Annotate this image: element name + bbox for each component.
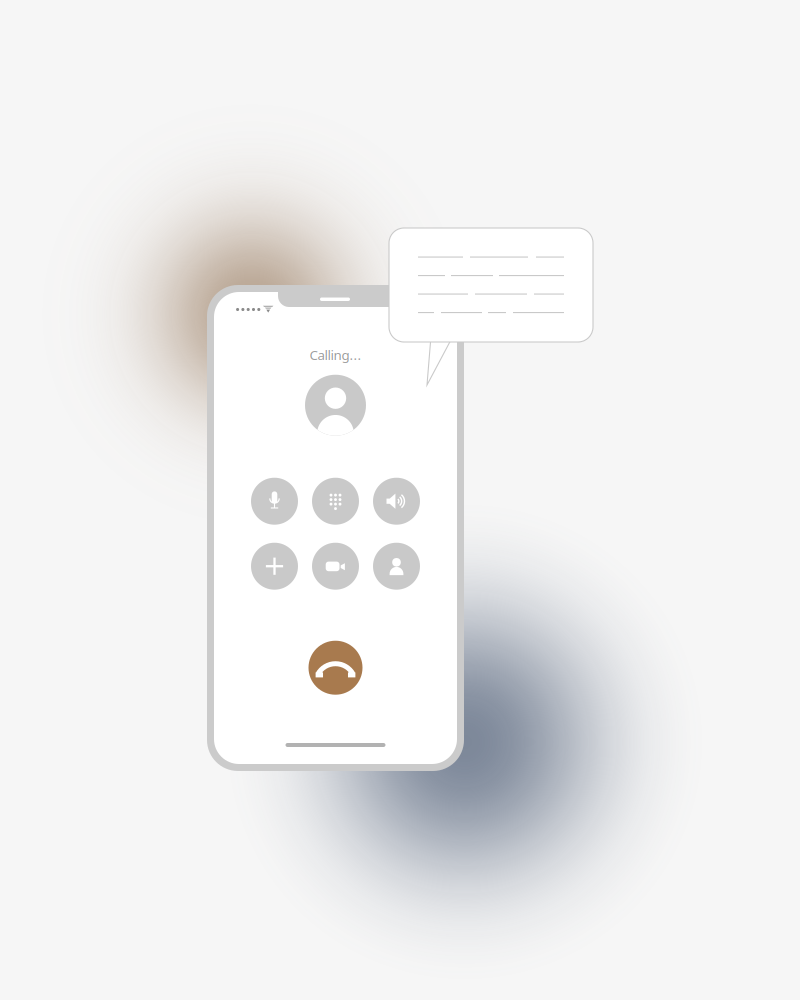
button[interactable]: FaceTime — [312, 543, 359, 590]
staticText: Calling... — [309, 346, 361, 364]
button[interactable]: Keypad — [312, 478, 359, 525]
button[interactable]: End call — [308, 641, 362, 695]
button[interactable]: Contacts — [373, 543, 420, 590]
button[interactable]: Mute — [251, 478, 298, 525]
button[interactable]: Speaker — [373, 478, 420, 525]
button[interactable]: Add call — [251, 543, 298, 590]
